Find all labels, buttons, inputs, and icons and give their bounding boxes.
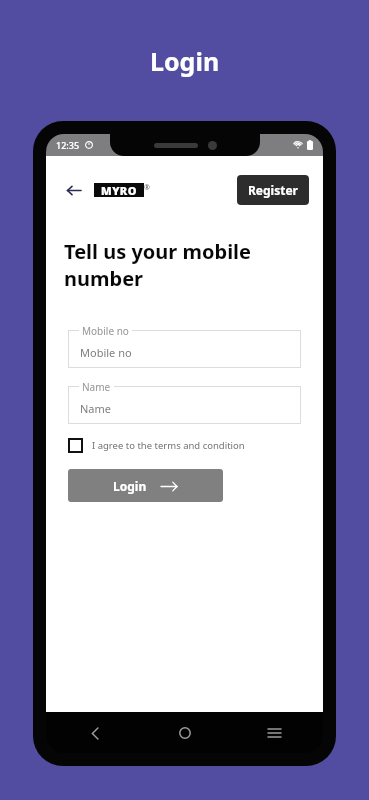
staticText: Login: [113, 478, 147, 494]
staticText: MYRO: [101, 183, 137, 197]
button[interactable]: Name: [68, 386, 301, 424]
staticText: Login: [150, 44, 220, 78]
button[interactable]: Home: [170, 718, 200, 748]
staticText: Name: [82, 380, 111, 394]
staticText: Register: [248, 182, 298, 198]
staticText: Name: [80, 401, 112, 416]
button[interactable]: Login: [68, 469, 223, 502]
staticText: I agree to the terms and condition: [92, 439, 245, 452]
button[interactable]: Register: [237, 175, 309, 205]
button[interactable]: Back: [80, 718, 110, 748]
button[interactable]: Back: [60, 177, 86, 203]
staticText: Tell us your mobile number: [64, 238, 252, 292]
staticText: Mobile no: [80, 345, 132, 360]
button[interactable]: I agree to the terms and condition: [68, 438, 301, 453]
staticText: 12:35: [56, 139, 80, 151]
button[interactable]: Recents: [259, 718, 289, 748]
button[interactable]: Mobile no: [68, 330, 301, 368]
staticText: ®: [144, 183, 150, 193]
staticText: Mobile no: [82, 324, 129, 338]
